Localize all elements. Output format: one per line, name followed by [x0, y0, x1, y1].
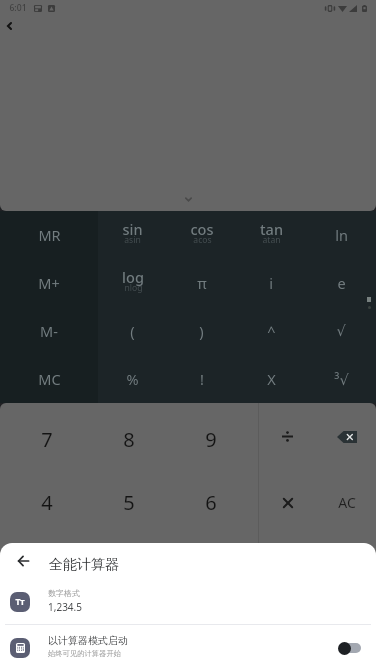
button[interactable]: Back [7, 545, 39, 577]
staticText: X [267, 369, 276, 389]
staticText: 1,234.5 [48, 600, 82, 614]
button[interactable]: 8 [88, 408, 170, 471]
staticText: 1 [41, 552, 53, 579]
staticText: 4 [41, 489, 53, 516]
other: Divide [282, 431, 293, 442]
staticText: log [122, 267, 144, 287]
staticText: ) [199, 321, 204, 341]
button[interactable]: Tт [0, 579, 376, 624]
button[interactable]: 2 [88, 534, 170, 597]
staticText: MR [38, 225, 61, 245]
staticText: 5 [123, 489, 135, 516]
button[interactable]: sin [98, 211, 167, 259]
button[interactable]: log [98, 259, 167, 307]
other: Multiply [283, 498, 293, 508]
staticText: asin [124, 234, 141, 246]
staticText: Tт [15, 596, 25, 608]
button[interactable]: − [258, 536, 317, 599]
button[interactable]: 以计算器模式启动 [0, 625, 376, 670]
staticText: MC [38, 369, 61, 389]
button[interactable]: MR [0, 211, 98, 259]
staticText: cos [190, 219, 214, 239]
button[interactable]: π [167, 259, 236, 307]
button[interactable]: 7 [5, 408, 88, 471]
button[interactable]: 4 [5, 471, 88, 534]
button[interactable]: 6 [170, 471, 252, 534]
button[interactable]: % [98, 355, 167, 403]
button[interactable]: M- [0, 307, 98, 355]
button[interactable]: 1 [5, 534, 88, 597]
staticText: 6:01 [9, 2, 27, 14]
button[interactable]: i [236, 259, 306, 307]
button[interactable]: Multiply [258, 473, 317, 536]
button[interactable]: ln [306, 211, 376, 259]
staticText: e [337, 273, 346, 293]
staticText: i [269, 273, 273, 293]
staticText: 数字格式 [48, 588, 80, 598]
staticText: acos [193, 234, 212, 246]
staticText: ³√ [334, 369, 349, 389]
staticText: √ [336, 323, 346, 340]
button[interactable]: tan [236, 211, 306, 259]
button[interactable]: √ [306, 307, 376, 355]
button[interactable]: Back [0, 14, 21, 38]
staticText: ( [130, 321, 135, 341]
button[interactable]: M+ [0, 259, 98, 307]
button[interactable]: ³√ [306, 355, 376, 403]
staticText: ln [335, 225, 348, 245]
staticText: 以计算器模式启动 [48, 634, 128, 647]
staticText: % [126, 369, 139, 389]
staticText: M- [40, 321, 58, 341]
staticText: 始终可见的计算器开始 [48, 649, 121, 658]
button[interactable]: 5 [88, 471, 170, 534]
button[interactable]: Divide [258, 410, 317, 473]
button[interactable]: ) [167, 307, 236, 355]
button[interactable]: ^ [236, 307, 306, 355]
button[interactable]: AC [317, 473, 376, 536]
staticText: ^ [267, 321, 276, 341]
button[interactable]: MC [0, 355, 98, 403]
staticText: AC [338, 493, 356, 512]
button[interactable]: Collapse keypad [177, 188, 199, 210]
staticText: atan [262, 234, 281, 246]
button[interactable]: e [306, 259, 376, 307]
button[interactable]: Start in calculator mode toggle [338, 635, 368, 661]
button[interactable]: ! [167, 355, 236, 403]
staticText: π [197, 273, 207, 293]
button[interactable]: X [236, 355, 306, 403]
staticText: 全能计算器 [49, 556, 119, 574]
other: Backspace [337, 431, 357, 443]
button[interactable]: cos [167, 211, 236, 259]
staticText: ! [200, 369, 204, 389]
staticText: nlog [124, 282, 143, 294]
staticText: 9 [205, 426, 217, 453]
staticText: M+ [38, 273, 60, 293]
staticText: 7 [41, 426, 53, 453]
button[interactable]: ( [98, 307, 167, 355]
staticText: 6 [205, 489, 217, 516]
button[interactable] [317, 536, 376, 599]
button[interactable]: 9 [170, 408, 252, 471]
staticText: sin [122, 219, 143, 239]
button[interactable]: Backspace [317, 410, 376, 473]
button[interactable]: 3 [170, 534, 252, 597]
staticText: 8 [123, 426, 135, 453]
staticText: tan [260, 219, 283, 239]
